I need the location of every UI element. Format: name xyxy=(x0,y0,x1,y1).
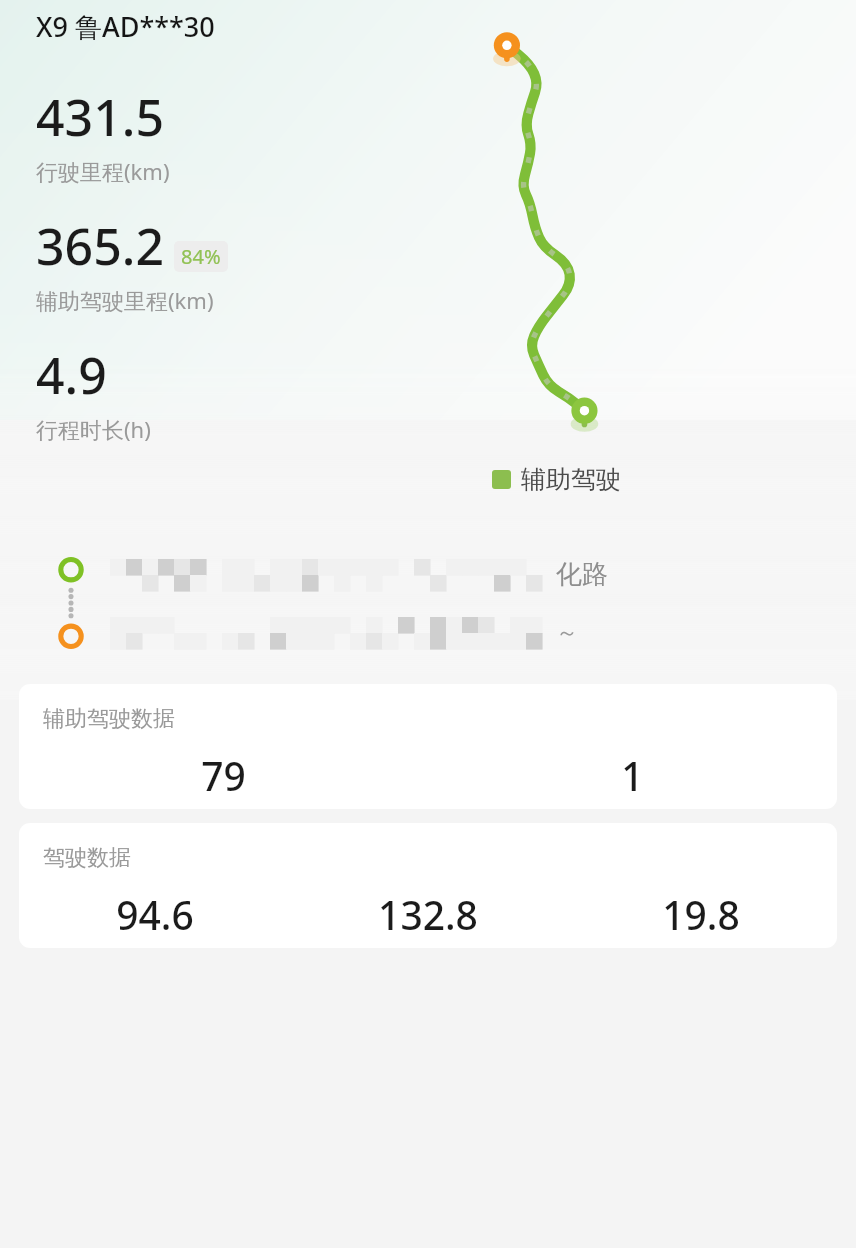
staticText: 辅助驾驶里程(km) xyxy=(36,285,214,315)
button[interactable]: 化路 xyxy=(0,528,856,678)
staticText: ～ xyxy=(556,619,578,647)
staticText: 行驶里程(km) xyxy=(36,156,170,186)
staticText: 1 xyxy=(621,749,644,802)
button[interactable]: 辅助驾驶数据 xyxy=(19,684,837,809)
staticText: 132.8 xyxy=(378,888,478,941)
staticText: 19.8 xyxy=(662,888,740,941)
staticText: 431.5 xyxy=(36,83,164,151)
staticText: 94.6 xyxy=(116,888,194,941)
staticText: 365.2 xyxy=(36,212,164,280)
button[interactable]: 辅助驾驶 xyxy=(490,462,623,497)
button[interactable]: 驾驶数据 xyxy=(19,823,837,948)
staticText: 4.9 xyxy=(36,341,107,409)
staticText: X9 鲁AD***30 xyxy=(36,8,215,45)
staticText: 辅助驾驶 xyxy=(521,464,621,495)
staticText: 79 xyxy=(201,749,246,802)
staticText: 84% xyxy=(181,243,221,270)
staticText: 化路 xyxy=(556,558,608,591)
staticText: 辅助驾驶数据 xyxy=(43,705,175,733)
staticText: 驾驶数据 xyxy=(43,844,131,872)
staticText: 行程时长(h) xyxy=(36,414,151,444)
